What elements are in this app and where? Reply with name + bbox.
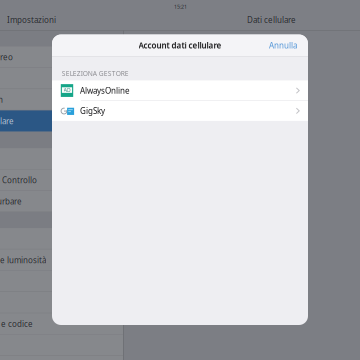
button[interactable]: Suoni: [0, 292, 123, 313]
staticText: Schermo e luminosità: [0, 255, 46, 265]
button[interactable]: Wi-Fi: [0, 68, 123, 89]
button[interactable]: Bluetooth: [0, 89, 123, 110]
button[interactable]: AO: [52, 81, 308, 100]
staticText: Impostazioni: [7, 15, 56, 25]
button[interactable]: Sfondo: [0, 271, 123, 292]
button[interactable]: Dati cellulare: [0, 110, 123, 132]
button[interactable]: Centro di Controllo: [0, 169, 123, 191]
button[interactable]: Generali: [0, 148, 123, 169]
staticText: Dati cellulare: [247, 15, 296, 25]
staticText: Dati cellulare: [0, 116, 14, 126]
staticText: Uso in aereo: [0, 52, 13, 62]
button[interactable]: Annulla: [52, 34, 94, 56]
staticText: GigSky: [80, 105, 105, 116]
button[interactable]: Notifiche: [0, 228, 123, 249]
button[interactable]: Uso in aereo: [0, 46, 123, 68]
staticText: AlwaysOnline: [80, 85, 130, 96]
staticText: 15:21: [174, 3, 187, 10]
staticText: SELEZIONA GESTORE: [62, 69, 129, 78]
staticText: Bluetooth: [0, 94, 3, 105]
button[interactable]: Impostazioni: [0, 0, 70, 18]
button[interactable]: Non disturbare: [0, 191, 123, 212]
staticText: Annulla: [269, 40, 297, 51]
staticText: Centro di Controllo: [0, 175, 37, 185]
staticText: Account dati cellulare: [138, 40, 221, 51]
button[interactable]: GigSky: [52, 101, 308, 121]
staticText: Touch ID e codice: [0, 319, 33, 329]
staticText: AO: [63, 86, 70, 93]
staticText: Non disturbare: [0, 196, 22, 207]
button[interactable]: Touch ID e codice: [0, 313, 123, 335]
button[interactable]: Schermo e luminosità: [0, 249, 123, 271]
